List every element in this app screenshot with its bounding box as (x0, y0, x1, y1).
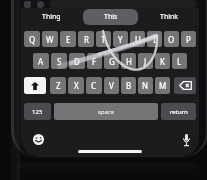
staticText: Think (160, 12, 179, 22)
button[interactable]: Emoji (31, 132, 46, 147)
button[interactable]: G (104, 53, 119, 69)
staticText: C (91, 80, 97, 91)
button[interactable]: Z (50, 77, 66, 94)
button[interactable]: E (60, 31, 76, 47)
button[interactable]: O (164, 31, 179, 47)
staticText: D (74, 56, 80, 67)
staticText: P (186, 34, 191, 45)
button[interactable]: X (68, 77, 84, 94)
button[interactable]: U (130, 31, 145, 47)
button[interactable]: F (87, 53, 102, 69)
staticText: T (101, 34, 106, 45)
button[interactable]: J (138, 53, 153, 69)
staticText: R (84, 34, 89, 45)
staticText: space (98, 108, 115, 116)
button[interactable]: P (181, 31, 196, 47)
staticText: I (153, 34, 156, 45)
staticText: X (74, 80, 79, 91)
button[interactable]: R (78, 31, 94, 47)
staticText: G (109, 56, 115, 67)
button[interactable]: This (83, 9, 138, 25)
button[interactable]: V (104, 77, 119, 94)
staticText: N (142, 80, 149, 91)
staticText: F (92, 56, 97, 67)
button[interactable]: N (138, 77, 153, 94)
staticText: M (159, 80, 167, 91)
button[interactable]: C (86, 77, 102, 94)
staticText: L (177, 56, 182, 67)
staticText: Y (118, 34, 123, 45)
button[interactable]: I (147, 31, 162, 47)
button[interactable]: Delete (174, 77, 196, 94)
button[interactable]: Shift (24, 77, 46, 94)
staticText: V (109, 80, 114, 91)
button[interactable]: T (96, 31, 111, 47)
staticText: K (160, 56, 165, 67)
staticText: This (104, 12, 118, 22)
button[interactable]: Think (142, 9, 197, 25)
button[interactable]: B (121, 77, 136, 94)
button[interactable]: M (155, 77, 170, 94)
button[interactable]: H (121, 53, 136, 69)
staticText: E (66, 34, 71, 45)
button[interactable]: Q (24, 31, 40, 47)
button[interactable]: Dictation (179, 132, 194, 147)
button[interactable]: return (161, 103, 196, 120)
staticText: Q (29, 34, 36, 45)
staticText: J (144, 56, 147, 67)
staticText: W (46, 34, 54, 45)
staticText: 123 (32, 108, 43, 116)
button[interactable]: W (42, 31, 58, 47)
button[interactable]: K (155, 53, 170, 69)
staticText: H (126, 56, 132, 67)
button[interactable]: Camera (24, 1, 31, 8)
button[interactable]: L (172, 53, 187, 69)
staticText: U (135, 34, 141, 45)
button[interactable]: space (54, 103, 158, 120)
staticText: A (38, 56, 44, 67)
button[interactable]: 123 (24, 103, 51, 120)
button[interactable]: D (69, 53, 85, 69)
button[interactable]: S (51, 53, 67, 69)
staticText: O (168, 34, 175, 45)
button[interactable]: Apps (37, 1, 44, 8)
staticText: return (170, 108, 188, 116)
button[interactable]: Thing (23, 9, 79, 25)
staticText: Z (56, 80, 61, 91)
staticText: S (57, 56, 62, 67)
staticText: Thing (42, 12, 61, 22)
button[interactable]: A (33, 53, 49, 69)
button[interactable]: Y (113, 31, 128, 47)
staticText: B (126, 80, 132, 91)
